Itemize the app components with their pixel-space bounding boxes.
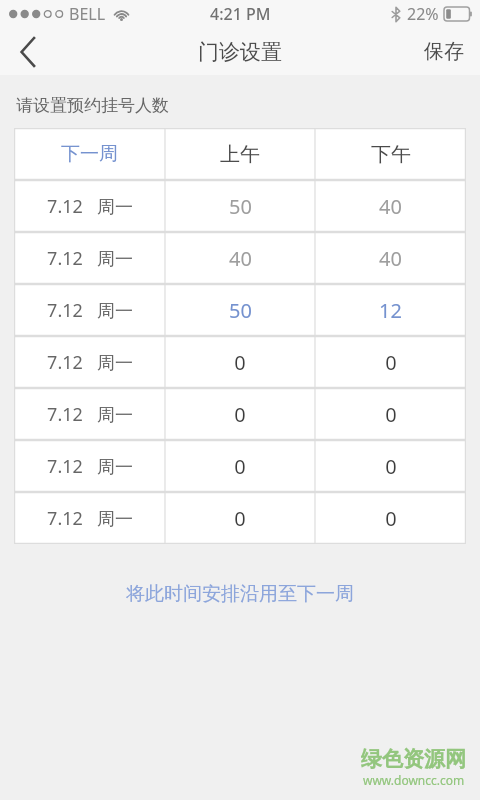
- staticText: 22%: [407, 3, 439, 25]
- staticText: 7.12 周一: [47, 298, 133, 323]
- staticText: 0: [234, 453, 246, 480]
- button[interactable]: 0: [315, 440, 466, 492]
- button[interactable]: 40: [165, 232, 315, 284]
- button[interactable]: 0: [165, 492, 315, 544]
- staticText: 7.12 周一: [47, 246, 133, 271]
- staticText: 0: [385, 505, 397, 532]
- button[interactable]: 下一周: [14, 128, 165, 180]
- staticText: 40: [229, 245, 252, 272]
- staticText: 7.12 周一: [47, 194, 133, 219]
- button[interactable]: 下午: [315, 128, 466, 180]
- staticText: 50: [229, 297, 252, 324]
- staticText: 0: [234, 505, 246, 532]
- staticText: 门诊设置: [198, 39, 282, 65]
- staticText: 0: [385, 453, 397, 480]
- button[interactable]: 7.12 周一: [14, 388, 165, 440]
- staticText: 请设置预约挂号人数: [16, 95, 169, 116]
- button[interactable]: 0: [165, 440, 315, 492]
- button[interactable]: 上午: [165, 128, 315, 180]
- button[interactable]: 7.12 周一: [14, 180, 165, 232]
- button[interactable]: 50: [165, 284, 315, 336]
- staticText: 50: [229, 193, 252, 220]
- staticText: 7.12 周一: [47, 506, 133, 531]
- staticText: 保存: [424, 39, 464, 64]
- staticText: 0: [234, 401, 246, 428]
- staticText: 上午: [220, 142, 260, 167]
- staticText: 4:21 PM: [210, 3, 271, 25]
- button[interactable]: 0: [315, 388, 466, 440]
- staticText: 0: [385, 401, 397, 428]
- button[interactable]: 0: [315, 336, 466, 388]
- staticText: 将此时间安排沿用至下一周: [126, 582, 354, 606]
- staticText: 7.12 周一: [47, 402, 133, 427]
- staticText: 0: [385, 349, 397, 376]
- staticText: 下一周: [61, 142, 118, 166]
- button[interactable]: 将此时间安排沿用至下一周: [0, 577, 480, 611]
- button[interactable]: 0: [315, 492, 466, 544]
- button[interactable]: 50: [165, 180, 315, 232]
- staticText: 下午: [371, 142, 411, 167]
- staticText: BELL: [69, 3, 106, 25]
- staticText: 12: [379, 297, 402, 324]
- staticText: 40: [379, 245, 402, 272]
- button[interactable]: 40: [315, 180, 466, 232]
- button[interactable]: 7.12 周一: [14, 492, 165, 544]
- button[interactable]: 7.12 周一: [14, 440, 165, 492]
- button[interactable]: Back: [0, 28, 56, 75]
- staticText: 0: [234, 349, 246, 376]
- staticText: www.downcc.com: [363, 772, 465, 788]
- button[interactable]: 0: [165, 336, 315, 388]
- staticText: 绿色资源网: [361, 746, 466, 772]
- button[interactable]: 12: [315, 284, 466, 336]
- button[interactable]: 7.12 周一: [14, 336, 165, 388]
- button[interactable]: 40: [315, 232, 466, 284]
- button[interactable]: 7.12 周一: [14, 232, 165, 284]
- button[interactable]: 保存: [408, 28, 480, 75]
- staticText: 7.12 周一: [47, 454, 133, 479]
- staticText: 40: [379, 193, 402, 220]
- staticText: 7.12 周一: [47, 350, 133, 375]
- button[interactable]: 0: [165, 388, 315, 440]
- button[interactable]: 7.12 周一: [14, 284, 165, 336]
